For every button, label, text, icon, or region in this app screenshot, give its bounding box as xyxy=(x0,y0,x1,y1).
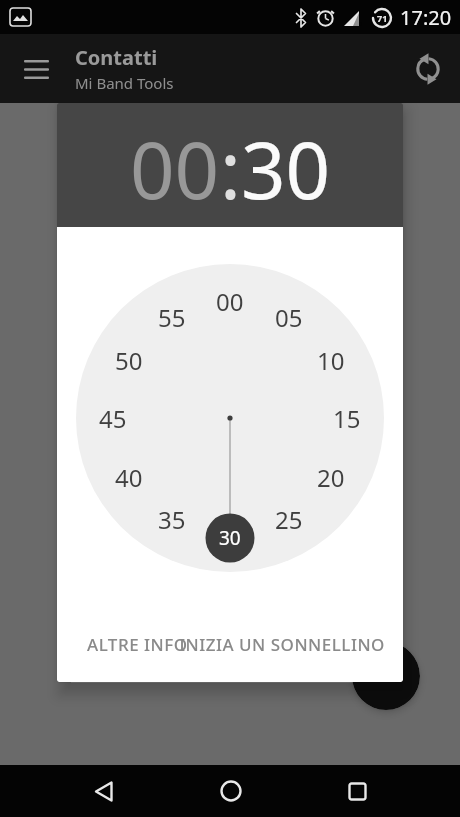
staticText: 45 xyxy=(99,402,127,434)
button[interactable] xyxy=(406,47,450,91)
button[interactable]: 20 xyxy=(307,461,355,493)
staticText: Mi Band Tools xyxy=(75,73,174,93)
button[interactable] xyxy=(167,765,294,817)
staticText: 05 xyxy=(275,301,303,333)
button[interactable]: 40 xyxy=(105,461,153,493)
staticText: 35 xyxy=(158,503,186,535)
button[interactable]: 15 xyxy=(323,402,371,434)
button[interactable] xyxy=(14,47,58,91)
button[interactable]: 30 xyxy=(206,522,254,554)
button[interactable] xyxy=(294,765,421,817)
staticText: 71 xyxy=(377,12,388,24)
staticText: : xyxy=(220,116,241,222)
button[interactable]: 55 xyxy=(148,301,196,333)
button[interactable]: 00 xyxy=(130,116,220,222)
button[interactable]: 50 xyxy=(105,344,153,376)
staticText: 10 xyxy=(317,344,345,376)
button[interactable]: INIZIA UN SONNELLINO xyxy=(179,633,385,656)
staticText: Contatti xyxy=(75,44,158,71)
staticText: 00 xyxy=(216,285,244,317)
button[interactable]: 10 xyxy=(307,344,355,376)
staticText: 30 xyxy=(219,525,241,551)
button[interactable]: 35 xyxy=(148,503,196,535)
button[interactable] xyxy=(352,642,420,710)
staticText: 20 xyxy=(317,461,345,493)
staticText: 50 xyxy=(115,344,143,376)
button[interactable]: 00 xyxy=(206,285,254,317)
staticText: 15 xyxy=(333,402,361,434)
button[interactable]: ALTRE INFO xyxy=(87,633,188,656)
button[interactable]: 25 xyxy=(265,503,313,535)
staticText: 55 xyxy=(158,301,186,333)
button[interactable]: 05 xyxy=(265,301,313,333)
staticText: 25 xyxy=(275,503,303,535)
staticText: 17:20 xyxy=(400,4,452,31)
button[interactable]: 30 xyxy=(241,116,331,222)
staticText: 40 xyxy=(115,461,143,493)
button[interactable]: 45 xyxy=(89,402,137,434)
button[interactable] xyxy=(40,765,167,817)
